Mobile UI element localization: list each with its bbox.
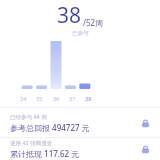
staticText: 34: [20, 95, 27, 102]
staticText: 36: [53, 95, 60, 102]
staticText: 已经参与 44 周: [10, 113, 47, 121]
staticText: 参考总回报 494727 元: [10, 122, 90, 133]
staticText: 累计抵现 117.62 元: [10, 148, 80, 159]
staticText: 已参与: [72, 30, 89, 37]
other: Rewards detail: [138, 116, 152, 130]
staticText: 35: [36, 95, 43, 102]
staticText: /52周: [83, 17, 104, 28]
staticText: 38: [85, 95, 92, 102]
staticText: 使用 45 张额度金: [10, 139, 53, 147]
staticText: 38: [57, 1, 82, 30]
button[interactable]: 使用 45 张额度金: [0, 138, 160, 160]
staticText: 37: [69, 95, 76, 102]
button[interactable]: 已经参与 44 周: [0, 108, 160, 137]
other: Cashback detail: [138, 142, 152, 156]
